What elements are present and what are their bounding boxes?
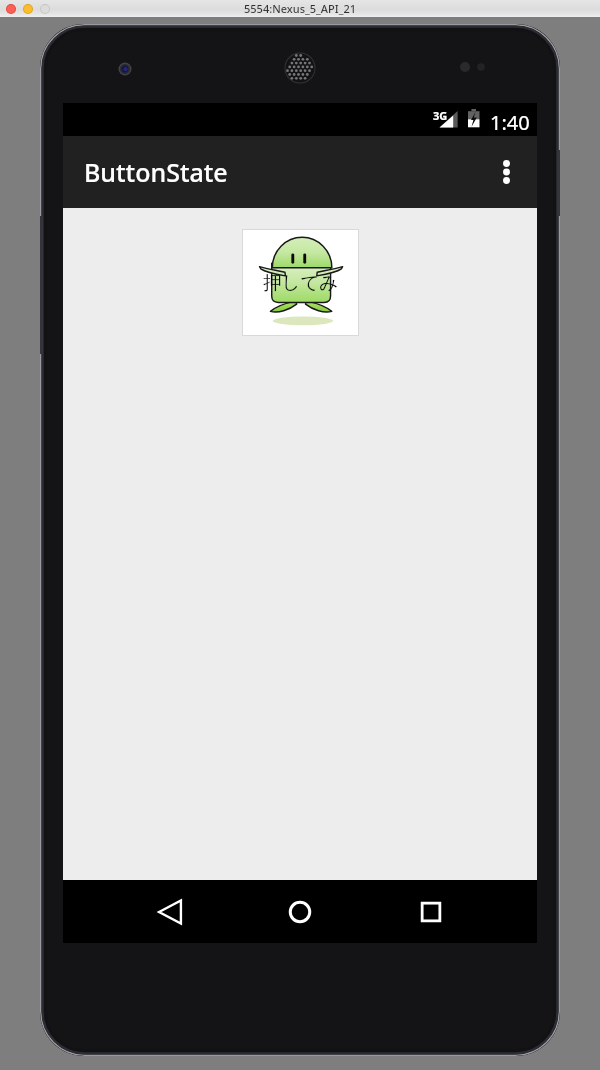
button[interactable]: 押してみ — [242, 229, 359, 336]
staticText: 5554:Nexus_5_API_21 — [244, 1, 357, 16]
staticText: 3G — [433, 108, 448, 123]
staticText: ButtonState — [84, 155, 228, 189]
staticText: 1:40 — [490, 109, 530, 136]
button[interactable]: More options — [478, 136, 534, 208]
button[interactable]: Back — [146, 880, 194, 943]
button[interactable]: Home — [276, 880, 324, 943]
button[interactable]: Recents — [407, 880, 455, 943]
staticText: 押してみ — [263, 271, 339, 294]
